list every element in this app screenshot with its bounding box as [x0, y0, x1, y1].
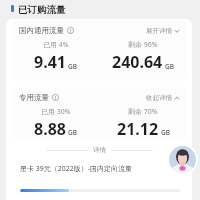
staticText: 剩余 70% — [128, 107, 158, 117]
button[interactable]: Customer service avatar — [169, 146, 196, 173]
staticText: GB — [161, 128, 170, 137]
staticText: 专用流量 — [19, 93, 49, 102]
staticText: 国内通用流量 — [19, 26, 64, 35]
staticText: 21.12 — [117, 118, 159, 139]
staticText: 9.41 — [34, 51, 66, 73]
staticText: 已用 30% — [41, 107, 71, 117]
staticText: GB — [68, 62, 77, 71]
staticText: GB — [165, 62, 174, 71]
button[interactable]: 详情 — [46, 146, 153, 154]
staticText: 已订购流量 — [18, 4, 66, 16]
staticText: 剩余 96% — [128, 40, 158, 50]
staticText: 240.64 — [112, 51, 163, 73]
button[interactable]: 国内通用流量 — [19, 26, 180, 35]
staticText: 星卡 39元（2022版）-国内定向流量 — [20, 164, 133, 174]
staticText: 展开详情 — [146, 27, 172, 35]
staticText: 8.88 — [34, 118, 66, 139]
button[interactable]: 专用流量 — [19, 93, 180, 102]
staticText: 收起详情 — [146, 94, 172, 102]
staticText: 已用 4% — [43, 40, 69, 50]
staticText: GB — [68, 128, 77, 137]
staticText: 详情 — [93, 146, 106, 154]
